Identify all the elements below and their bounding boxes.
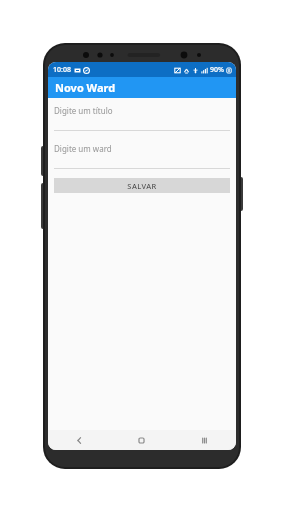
- button[interactable]: Back: [48, 430, 110, 450]
- staticText: Novo Ward: [55, 80, 116, 95]
- button[interactable]: Digite um ward: [54, 143, 230, 169]
- button[interactable]: Home: [110, 430, 173, 450]
- button[interactable]: Recent apps: [173, 430, 236, 450]
- staticText: Digite um título: [54, 105, 113, 116]
- button[interactable]: Digite um título: [54, 105, 230, 131]
- staticText: 90%: [210, 65, 224, 75]
- staticText: 10:08: [53, 65, 71, 75]
- button[interactable]: SALVAR: [54, 178, 230, 193]
- staticText: SALVAR: [127, 181, 157, 191]
- staticText: Digite um ward: [54, 143, 112, 154]
